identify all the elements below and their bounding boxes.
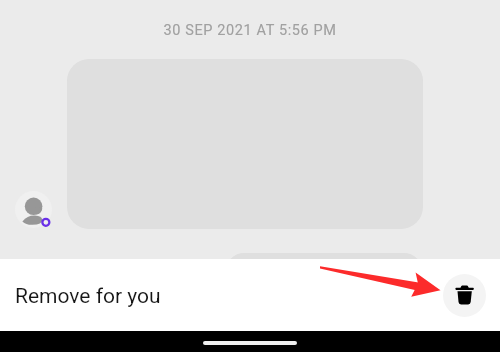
staticText: Remove for you (15, 284, 161, 309)
button[interactable]: Delete (443, 274, 486, 317)
button[interactable]: Remove for you (0, 259, 500, 331)
staticText: 30 SEP 2021 AT 5:56 PM (0, 22, 500, 39)
